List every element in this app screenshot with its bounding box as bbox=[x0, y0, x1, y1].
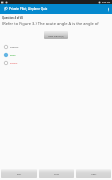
staticText: Private Pilot, Airplane Quiz bbox=[9, 7, 48, 11]
staticText: Exit bbox=[17, 172, 22, 175]
button[interactable]: Exit bbox=[1, 169, 37, 178]
staticText: Prev bbox=[54, 172, 59, 175]
button[interactable]: attack bbox=[0, 51, 112, 59]
staticText: incidence bbox=[10, 46, 19, 49]
staticText: attack bbox=[10, 54, 16, 57]
staticText: 3:48 PM bbox=[102, 1, 111, 4]
button[interactable]: dihedral bbox=[0, 59, 112, 67]
button[interactable]: incidence bbox=[0, 43, 112, 51]
staticText: dihedral bbox=[10, 62, 18, 65]
staticText: View Figure(s) bbox=[48, 34, 64, 37]
button[interactable]: More options bbox=[104, 4, 112, 14]
staticText: (Refer to Figure 3.) The acute angle A i… bbox=[2, 21, 99, 26]
button[interactable]: View Figure(s) bbox=[44, 31, 68, 39]
staticText: Question 4 of 45 bbox=[2, 16, 23, 20]
button[interactable]: Next bbox=[76, 169, 111, 178]
staticText: Next bbox=[91, 172, 97, 175]
button[interactable]: Prev bbox=[39, 169, 74, 178]
